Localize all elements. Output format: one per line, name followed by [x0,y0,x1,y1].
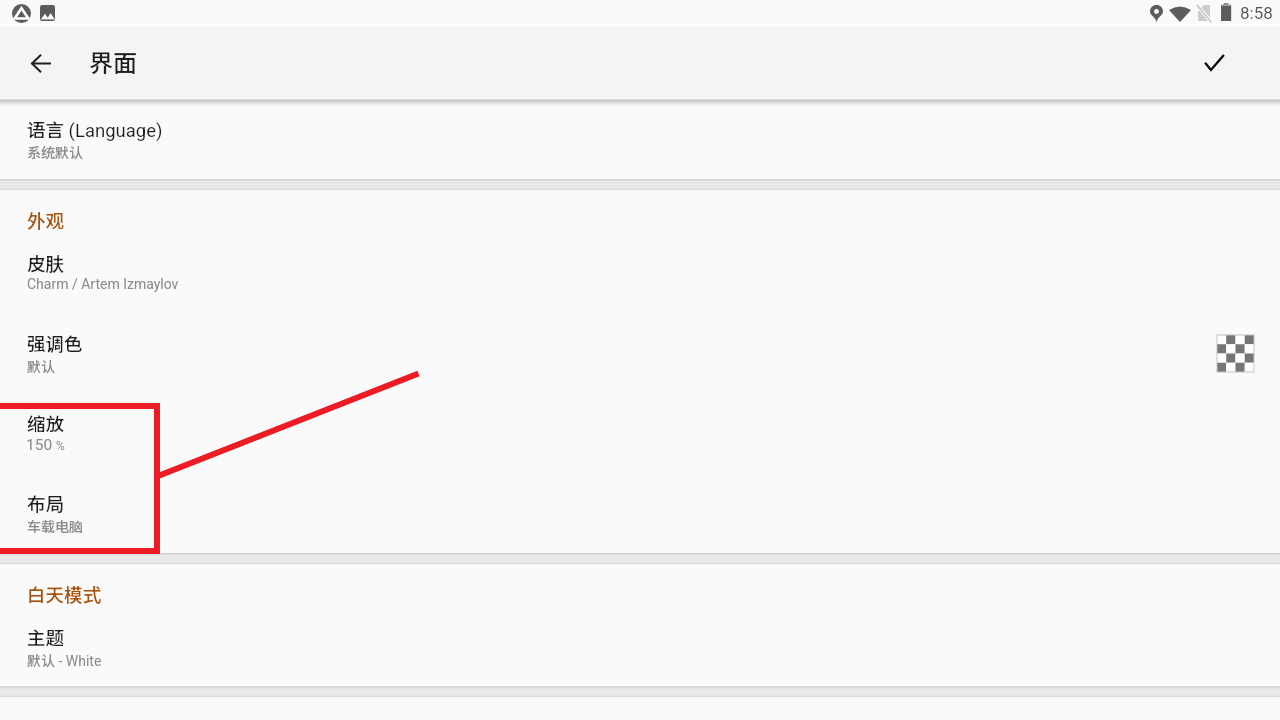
staticText: 150 % [26,436,65,454]
staticText: 主题 [27,624,65,651]
button[interactable]: 语言 (Language) [0,103,1280,165]
staticText: 界面 [89,44,137,79]
staticText: 车载电脑 [27,516,83,536]
staticText: 语言 (Language) [27,116,163,143]
staticText: 默认 - White [27,650,102,670]
staticText: 外观 [27,207,65,233]
staticText: 皮肤 [27,250,65,277]
button[interactable]: 布局 [0,477,1280,539]
staticText: 系统默认 [27,142,83,162]
staticText: 缩放 [27,410,65,437]
staticText: 8:58 [1240,3,1273,23]
button[interactable]: 皮肤 [0,237,1280,299]
staticText: 默认 [27,356,55,376]
button[interactable]: 强调色 [0,317,1280,379]
button[interactable]: Accent colour swatch [1217,335,1254,372]
button[interactable]: 缩放 [0,397,1280,459]
button[interactable]: Back [16,38,66,88]
staticText: 布局 [27,490,65,517]
staticText: 强调色 [27,330,83,357]
button[interactable]: 主题 [0,611,1280,673]
button[interactable]: Confirm [1189,37,1239,87]
staticText: Charm / Artem Izmaylov [27,276,179,292]
staticText: 白天模式 [27,581,102,607]
